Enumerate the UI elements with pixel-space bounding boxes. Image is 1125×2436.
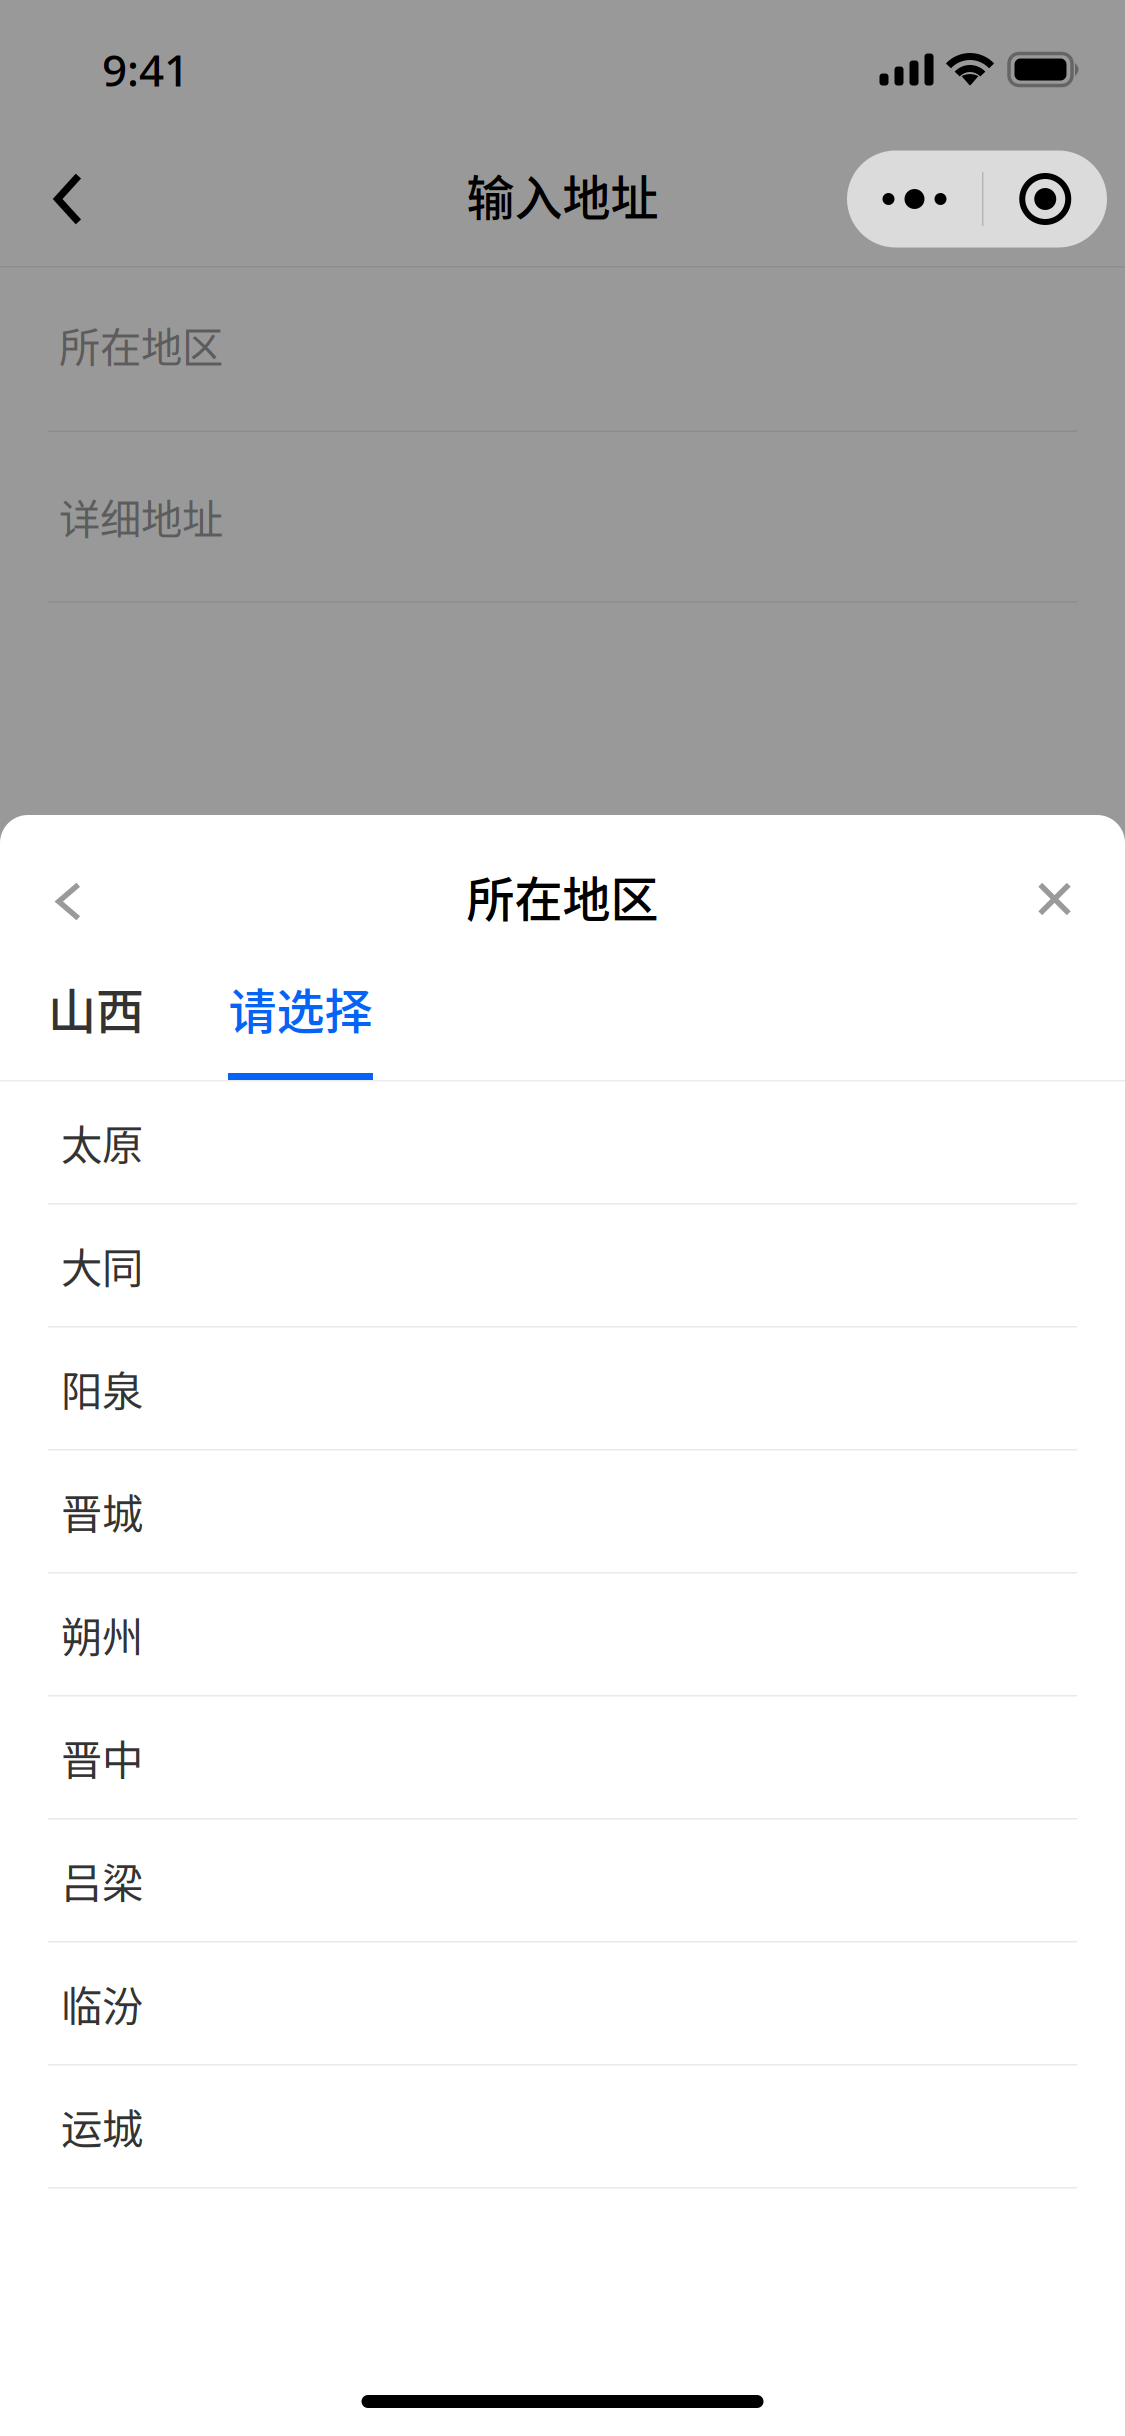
staticText: 晋中 xyxy=(61,1727,143,1787)
button[interactable]: 晋城 xyxy=(0,1450,1125,1573)
button[interactable]: 晋中 xyxy=(0,1696,1125,1819)
button[interactable]: 所在地区 xyxy=(0,267,1125,430)
staticText: 山西 xyxy=(48,973,144,1043)
button[interactable]: 山西 xyxy=(44,968,148,1080)
button[interactable]: 临汾 xyxy=(0,1942,1125,2065)
staticText: 9:41 xyxy=(102,40,189,99)
staticText: 吕梁 xyxy=(61,1850,143,1910)
button[interactable]: 运城 xyxy=(0,2065,1125,2188)
button[interactable]: 阳泉 xyxy=(0,1327,1125,1450)
button[interactable]: Close xyxy=(984,829,1125,954)
staticText: 朔州 xyxy=(61,1604,143,1664)
staticText: 详细地址 xyxy=(59,487,223,546)
staticText: 请选择 xyxy=(228,973,372,1043)
staticText: 晋城 xyxy=(61,1481,143,1541)
staticText: 所在地区 xyxy=(466,861,658,931)
button[interactable]: 大同 xyxy=(0,1204,1125,1327)
button[interactable]: 太原 xyxy=(0,1081,1125,1204)
staticText: 阳泉 xyxy=(61,1358,143,1418)
button[interactable]: 详细地址 xyxy=(0,432,1125,601)
staticText: 运城 xyxy=(61,2096,143,2156)
button[interactable]: 吕梁 xyxy=(0,1819,1125,1942)
staticText: 所在地区 xyxy=(59,315,223,374)
staticText: 大同 xyxy=(61,1235,143,1295)
staticText: 临汾 xyxy=(61,1973,143,2033)
button[interactable]: 请选择 xyxy=(228,968,373,1080)
staticText: 输入地址 xyxy=(466,160,658,229)
button[interactable]: Back xyxy=(0,826,137,956)
staticText: 太原 xyxy=(61,1112,143,1172)
button[interactable]: 朔州 xyxy=(0,1573,1125,1696)
button[interactable]: More options and close mini program xyxy=(847,150,1107,247)
button[interactable]: Back xyxy=(13,144,123,254)
